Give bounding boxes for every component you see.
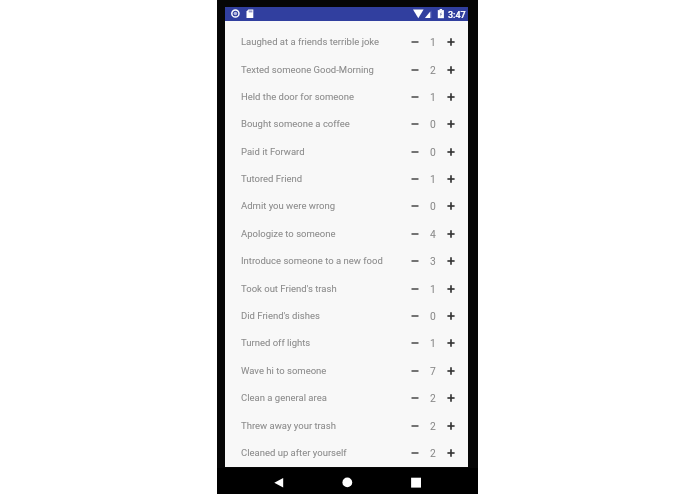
button[interactable]: Increment: [443, 363, 459, 379]
button[interactable]: Decrement: [407, 34, 423, 50]
button[interactable]: Decrement: [407, 144, 423, 160]
staticText: 4: [430, 228, 436, 240]
staticText: 1: [430, 36, 436, 48]
button[interactable]: Cleaned up after yourself: [225, 439, 468, 466]
button[interactable]: Decrement: [407, 253, 423, 269]
button[interactable]: Increment: [443, 253, 459, 269]
staticText: Laughed at a friends terrible joke: [241, 36, 380, 47]
button[interactable]: Increment: [443, 171, 459, 187]
button[interactable]: Introduce someone to a new food: [225, 247, 468, 274]
staticText: 2: [430, 420, 436, 432]
button[interactable]: Increment: [443, 116, 459, 132]
button[interactable]: Increment: [443, 390, 459, 406]
button[interactable]: Decrement: [407, 171, 423, 187]
staticText: Bought someone a coffee: [241, 118, 350, 129]
staticText: Threw away your trash: [241, 420, 336, 431]
button[interactable]: Decrement: [407, 335, 423, 351]
button[interactable]: Threw away your trash: [225, 412, 468, 439]
staticText: Introduce someone to a new food: [241, 255, 383, 266]
staticText: 3: [430, 255, 436, 267]
button[interactable]: Decrement: [407, 418, 423, 434]
staticText: Admit you were wrong: [241, 200, 336, 211]
button[interactable]: Took out Friend's trash: [225, 275, 468, 302]
button[interactable]: Turned off lights: [225, 329, 468, 356]
button[interactable]: Increment: [443, 89, 459, 105]
button[interactable]: Did Friend's dishes: [225, 302, 468, 329]
staticText: 7: [430, 365, 436, 377]
staticText: Texted someone Good-Morning: [241, 64, 374, 75]
button[interactable]: Increment: [443, 445, 459, 461]
staticText: Apologize to someone: [241, 228, 336, 239]
button[interactable]: Wave hi to someone: [225, 357, 468, 384]
button[interactable]: Decrement: [407, 116, 423, 132]
staticText: 2: [430, 64, 436, 76]
staticText: Took out Friend's trash: [241, 283, 337, 294]
button[interactable]: Increment: [443, 144, 459, 160]
staticText: 1: [430, 91, 436, 103]
button[interactable]: Decrement: [407, 445, 423, 461]
button[interactable]: Clean a general area: [225, 384, 468, 411]
button[interactable]: Paid it Forward: [225, 138, 468, 165]
button[interactable]: Decrement: [407, 308, 423, 324]
staticText: Cleaned up after yourself: [241, 447, 347, 458]
staticText: Clean a general area: [241, 392, 327, 403]
staticText: 0: [430, 146, 436, 158]
staticText: 0: [430, 310, 436, 322]
button[interactable]: Increment: [443, 226, 459, 242]
button[interactable]: Apologize to someone: [225, 220, 468, 247]
button[interactable]: Bought someone a coffee: [225, 110, 468, 137]
button[interactable]: Texted someone Good-Morning: [225, 56, 468, 83]
button[interactable]: Held the door for someone: [225, 83, 468, 110]
staticText: 0: [430, 200, 436, 212]
button[interactable]: Laughed at a friends terrible joke: [225, 28, 468, 55]
button[interactable]: Increment: [443, 34, 459, 50]
staticText: 1: [430, 337, 436, 349]
button[interactable]: Increment: [443, 198, 459, 214]
button[interactable]: Increment: [443, 418, 459, 434]
button[interactable]: Back: [268, 470, 290, 492]
staticText: 2: [430, 447, 436, 459]
button[interactable]: Admit you were wrong: [225, 192, 468, 219]
button[interactable]: Increment: [443, 281, 459, 297]
button[interactable]: Increment: [443, 335, 459, 351]
staticText: 2: [430, 392, 436, 404]
staticText: Wave hi to someone: [241, 365, 327, 376]
button[interactable]: Decrement: [407, 198, 423, 214]
button[interactable]: Decrement: [407, 62, 423, 78]
button[interactable]: Decrement: [407, 281, 423, 297]
button[interactable]: Decrement: [407, 363, 423, 379]
button[interactable]: Decrement: [407, 390, 423, 406]
button[interactable]: Tutored Friend: [225, 165, 468, 192]
button[interactable]: Decrement: [407, 89, 423, 105]
staticText: 1: [430, 283, 436, 295]
button[interactable]: Recents: [405, 470, 427, 492]
staticText: Turned off lights: [241, 337, 311, 348]
staticText: Paid it Forward: [241, 146, 305, 157]
staticText: 0: [430, 118, 436, 130]
button[interactable]: Home: [336, 470, 358, 492]
staticText: Held the door for someone: [241, 91, 355, 102]
button[interactable]: Increment: [443, 308, 459, 324]
staticText: 1: [430, 173, 436, 185]
staticText: 3:47: [448, 10, 466, 21]
staticText: Tutored Friend: [241, 173, 303, 184]
button[interactable]: Increment: [443, 62, 459, 78]
staticText: Did Friend's dishes: [241, 310, 320, 321]
button[interactable]: Decrement: [407, 226, 423, 242]
